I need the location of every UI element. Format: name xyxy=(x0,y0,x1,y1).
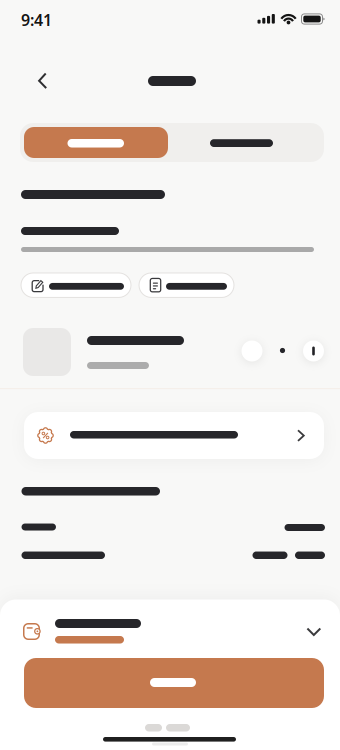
button[interactable]: Notes xyxy=(139,273,234,297)
button[interactable]: Confirm xyxy=(24,658,324,708)
button[interactable]: Second segment xyxy=(168,127,320,158)
button[interactable]: Edit xyxy=(21,273,131,297)
button[interactable]: Back xyxy=(25,64,59,98)
button[interactable]: Payment method xyxy=(20,607,324,653)
button[interactable]: Decrease quantity xyxy=(241,340,262,361)
staticText: 9:41 xyxy=(21,9,52,30)
button[interactable]: Increase quantity xyxy=(303,340,324,361)
button[interactable]: Selected segment xyxy=(24,127,168,158)
button[interactable]: Coupon xyxy=(24,412,324,459)
